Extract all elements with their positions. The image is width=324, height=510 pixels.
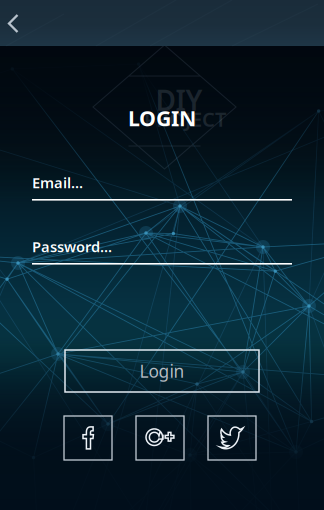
staticText: Email... bbox=[32, 173, 83, 192]
staticText: PROJECT bbox=[144, 106, 226, 132]
staticText: Login bbox=[139, 359, 184, 382]
button[interactable]: Login bbox=[65, 350, 259, 392]
staticText: Password... bbox=[32, 237, 112, 256]
button[interactable]: Sign in with Google bbox=[136, 416, 184, 460]
button[interactable]: Back bbox=[0, 0, 44, 46]
button[interactable]: Sign in with Facebook bbox=[64, 416, 112, 460]
button[interactable]: Sign in with Twitter bbox=[208, 416, 256, 460]
staticText: LOGIN bbox=[128, 104, 196, 132]
staticText: DIY bbox=[155, 81, 202, 119]
